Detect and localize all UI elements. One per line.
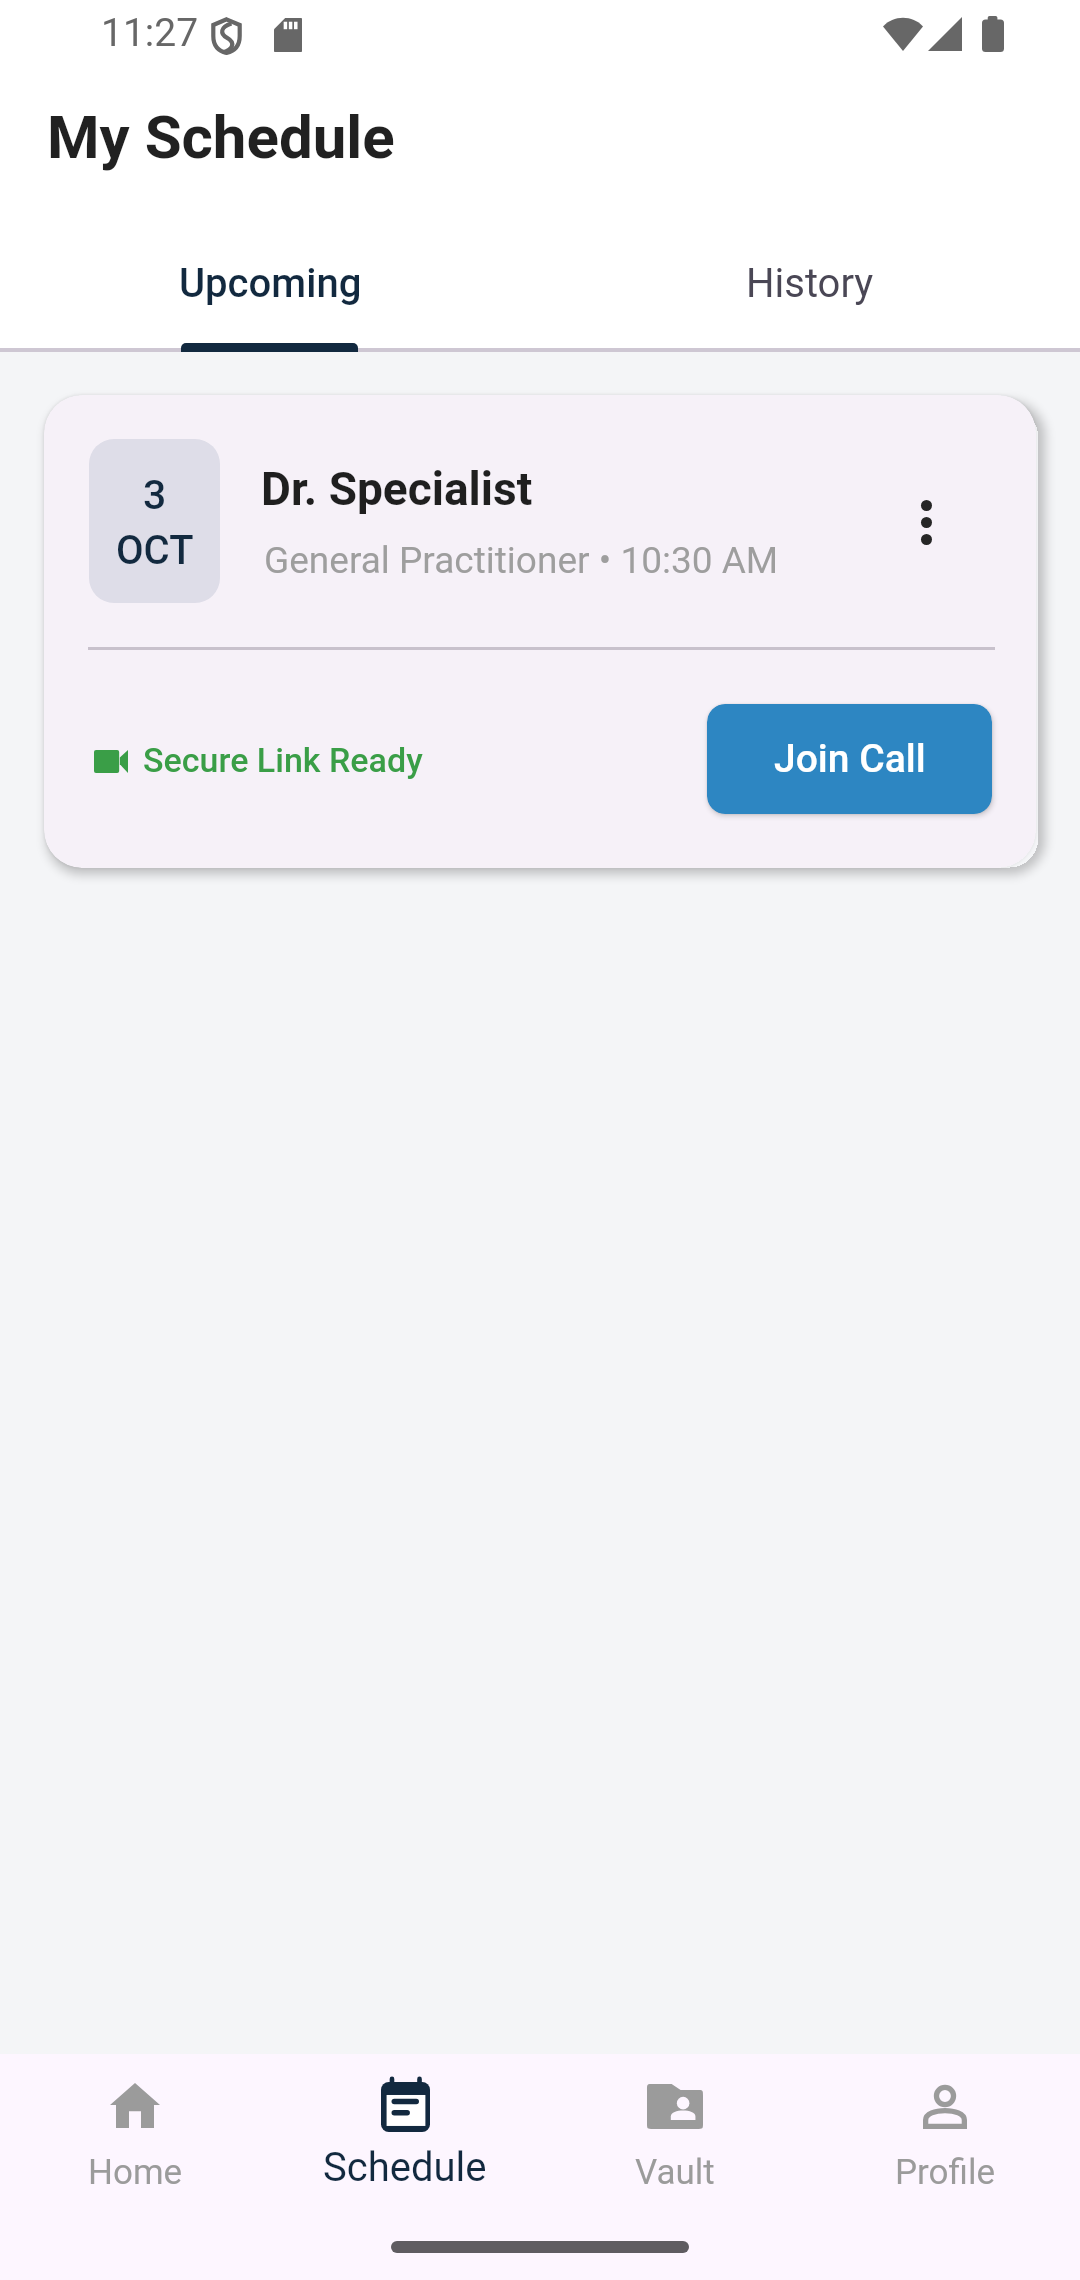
button[interactable]: Join Call bbox=[707, 704, 992, 814]
button[interactable]: Upcoming bbox=[0, 236, 540, 352]
button[interactable]: Home bbox=[0, 2054, 270, 2214]
staticText: 11:27 bbox=[101, 10, 199, 56]
button[interactable]: More options bbox=[878, 474, 974, 570]
staticText: Home bbox=[88, 2152, 183, 2193]
staticText: Dr. Specialist bbox=[261, 462, 533, 516]
staticText: Upcoming bbox=[179, 260, 362, 307]
button[interactable]: History bbox=[540, 236, 1080, 352]
staticText: Join Call bbox=[774, 736, 926, 782]
button[interactable]: Schedule bbox=[270, 2054, 540, 2214]
staticText: History bbox=[746, 260, 874, 307]
staticText: Vault bbox=[635, 2152, 715, 2193]
staticText: Schedule bbox=[323, 2144, 487, 2191]
staticText: Secure Link Ready bbox=[143, 740, 423, 780]
button[interactable]: Profile bbox=[810, 2054, 1080, 2214]
staticText: General Practitioner • 10:30 AM bbox=[264, 539, 779, 582]
staticText: OCT bbox=[116, 527, 194, 574]
staticText: Profile bbox=[895, 2152, 996, 2193]
staticText: 3 bbox=[143, 471, 167, 519]
button[interactable]: Vault bbox=[540, 2054, 810, 2214]
button[interactable]: 3 bbox=[44, 395, 1036, 868]
staticText: My Schedule bbox=[47, 102, 395, 172]
